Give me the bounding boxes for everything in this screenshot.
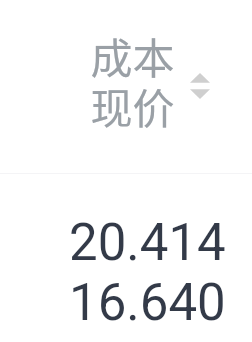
staticText: 20.414 — [69, 213, 226, 273]
other: Sort order — [190, 73, 210, 99]
staticText: 成本 现价 — [90, 25, 175, 136]
button[interactable]: 成本 现价 — [0, 0, 252, 173]
staticText: 16.640 — [69, 273, 226, 333]
